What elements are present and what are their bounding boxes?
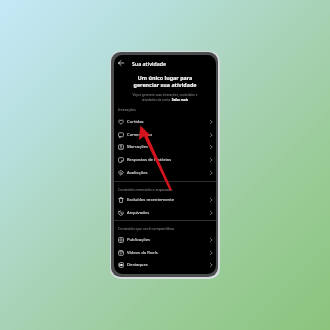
staticText: Marcações — [127, 144, 209, 150]
button[interactable]: Publicações — [114, 234, 216, 246]
staticText: Arquivados — [127, 210, 209, 216]
staticText: Veja e gerencie suas interações, conteúd… — [120, 93, 210, 101]
button[interactable]: Excluídos recentemente — [114, 194, 216, 206]
other: Voltar — [118, 60, 124, 66]
staticText: Curtidas — [127, 119, 209, 125]
staticText: Vídeos do Reels — [127, 250, 209, 256]
button[interactable]: Comentários — [114, 129, 216, 141]
button[interactable]: Avaliações — [114, 167, 216, 179]
staticText: Publicações — [127, 237, 209, 243]
button[interactable]: Respostas de histórias — [114, 154, 216, 166]
staticText: Avaliações — [127, 170, 209, 176]
staticText: Destaques — [127, 262, 209, 268]
staticText: Conteúdo removido e arquivado — [118, 187, 173, 192]
staticText: Um único lugar para gerenciar sua ativid… — [120, 74, 210, 88]
button[interactable]: Vídeos do Reels — [114, 247, 216, 259]
staticText: Excluídos recentemente — [127, 197, 209, 203]
staticText: Respostas de histórias — [127, 157, 209, 163]
button[interactable]: Arquivados — [114, 207, 216, 219]
staticText: Conteúdo que você compartilhou — [118, 226, 175, 231]
button[interactable]: Destaques — [114, 259, 216, 271]
staticText: Interações — [118, 107, 136, 112]
staticText: Sua atividade — [132, 60, 167, 67]
button[interactable]: Voltar — [114, 55, 216, 71]
button[interactable]: Marcações — [114, 141, 216, 153]
staticText: Comentários — [127, 132, 209, 138]
button[interactable]: Curtidas — [114, 116, 216, 128]
